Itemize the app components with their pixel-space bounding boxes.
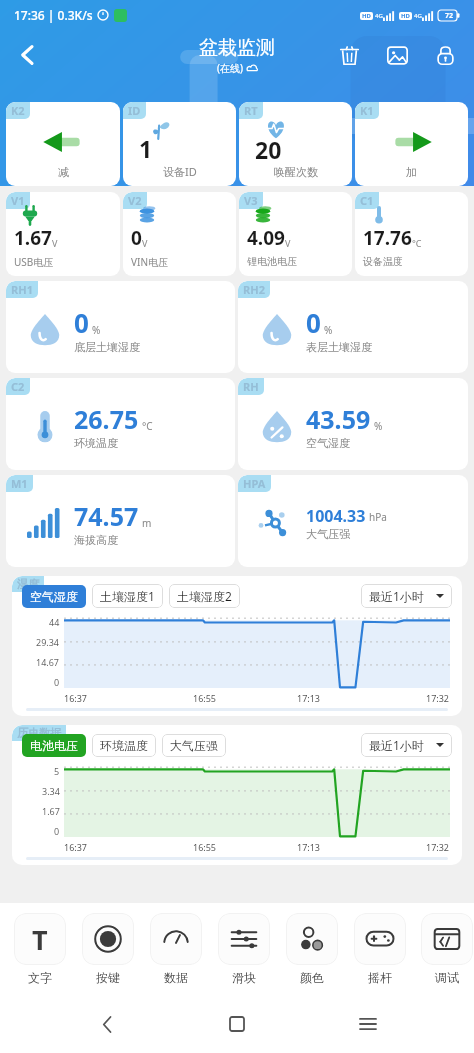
staticText: 0 bbox=[306, 305, 321, 340]
button[interactable]: K1 bbox=[355, 102, 468, 186]
staticText: °C bbox=[412, 237, 422, 249]
button[interactable]: 滑块 bbox=[216, 913, 272, 985]
staticText: 环境温度 bbox=[100, 738, 148, 753]
button[interactable]: Back bbox=[83, 1000, 131, 1048]
button[interactable]: 土壤湿度1 bbox=[92, 584, 163, 608]
staticText: 摇杆 bbox=[368, 970, 392, 985]
button[interactable]: Back bbox=[6, 33, 50, 77]
staticText: 17:13 bbox=[297, 692, 321, 704]
button[interactable]: ID bbox=[123, 102, 236, 186]
button[interactable]: V2 bbox=[123, 192, 236, 276]
staticText: 数据 bbox=[164, 970, 188, 985]
staticText: 16:55 bbox=[193, 841, 217, 853]
button[interactable]: Home bbox=[213, 1000, 261, 1048]
staticText: 大气压强 bbox=[306, 527, 350, 541]
staticText: USB电压 bbox=[14, 255, 54, 268]
staticText: K1 bbox=[360, 103, 374, 118]
button[interactable]: 摇杆 bbox=[352, 913, 408, 985]
staticText: V3 bbox=[244, 193, 258, 208]
button[interactable]: Image bbox=[380, 38, 414, 72]
staticText: 环境温度 bbox=[74, 436, 118, 450]
staticText: V2 bbox=[128, 193, 142, 208]
staticText: RH bbox=[243, 379, 259, 394]
button[interactable]: HPA bbox=[238, 475, 468, 567]
button[interactable]: RH bbox=[238, 378, 468, 470]
staticText: 海拔高度 bbox=[74, 533, 118, 547]
staticText: 16:37 bbox=[64, 692, 88, 704]
button[interactable]: RH1 bbox=[6, 281, 235, 373]
button[interactable]: 调试 bbox=[420, 913, 474, 985]
button[interactable]: 数据 bbox=[148, 913, 204, 985]
staticText: ID bbox=[128, 103, 141, 118]
staticText: 1.67 bbox=[42, 805, 60, 817]
staticText: 土壤湿度1 bbox=[100, 588, 155, 604]
staticText: T bbox=[32, 921, 48, 958]
staticText: 0 bbox=[131, 225, 142, 251]
staticText: 土壤湿度2 bbox=[177, 588, 232, 604]
button[interactable]: V1 bbox=[6, 192, 120, 276]
button[interactable]: 电池电压 bbox=[22, 734, 86, 757]
button[interactable]: RH2 bbox=[238, 281, 468, 373]
staticText: 调试 bbox=[435, 970, 459, 985]
button[interactable]: 最近1小时 bbox=[361, 733, 452, 757]
button[interactable]: 环境温度 bbox=[92, 734, 156, 757]
staticText: V bbox=[285, 237, 291, 249]
staticText: 1004.33 bbox=[306, 505, 366, 527]
staticText: 电池电压 bbox=[30, 738, 78, 753]
staticText: 5 bbox=[54, 765, 60, 777]
button[interactable]: 空气湿度 bbox=[22, 585, 86, 608]
staticText: 3.34 bbox=[42, 785, 60, 797]
staticText: 17:13 bbox=[297, 841, 321, 853]
staticText: 44 bbox=[49, 616, 60, 628]
button[interactable]: 颜色 bbox=[284, 913, 340, 985]
staticText: 17:32 bbox=[426, 692, 450, 704]
button[interactable]: 按键 bbox=[80, 913, 136, 985]
button[interactable]: Recents bbox=[344, 1000, 392, 1048]
button[interactable]: V3 bbox=[239, 192, 352, 276]
staticText: 74.57 bbox=[74, 499, 139, 533]
staticText: 0 bbox=[54, 676, 60, 688]
button[interactable]: Delete bbox=[332, 38, 366, 72]
staticText: 最近1小时 bbox=[369, 588, 424, 604]
staticText: % bbox=[324, 323, 333, 337]
staticText: 17.76 bbox=[363, 225, 412, 251]
staticText: 43.59 bbox=[306, 402, 371, 436]
button[interactable]: Lock bbox=[428, 38, 462, 72]
staticText: 盆栽监测 bbox=[199, 36, 275, 60]
button[interactable]: C2 bbox=[6, 378, 235, 470]
staticText: 29.34 bbox=[36, 636, 60, 648]
staticText: HD bbox=[401, 12, 410, 20]
button[interactable]: 大气压强 bbox=[162, 734, 226, 757]
staticText: 1.67 bbox=[14, 225, 52, 251]
button[interactable]: K2 bbox=[6, 102, 120, 186]
staticText: 滑块 bbox=[232, 970, 256, 985]
staticText: 设备温度 bbox=[363, 255, 403, 268]
staticText: HD bbox=[362, 12, 371, 20]
staticText: C1 bbox=[360, 193, 374, 208]
staticText: 4.09 bbox=[247, 225, 285, 251]
staticText: K2 bbox=[11, 103, 25, 118]
staticText: 历史数据 bbox=[17, 726, 61, 740]
button[interactable]: RT bbox=[239, 102, 352, 186]
staticText: RT bbox=[244, 103, 258, 118]
staticText: (在线) bbox=[217, 61, 243, 75]
button[interactable]: 土壤湿度2 bbox=[169, 584, 240, 608]
staticText: 72 bbox=[445, 11, 454, 21]
button[interactable]: C1 bbox=[355, 192, 468, 276]
button[interactable]: 最近1小时 bbox=[361, 584, 452, 608]
staticText: 锂电池电压 bbox=[247, 255, 297, 268]
staticText: 17:32 bbox=[426, 841, 450, 853]
staticText: 空气湿度 bbox=[30, 589, 78, 604]
staticText: 20 bbox=[255, 134, 282, 165]
staticText: 17:36 | 0.3K/s bbox=[14, 7, 93, 23]
staticText: V1 bbox=[11, 193, 25, 208]
staticText: 14.67 bbox=[36, 656, 60, 668]
staticText: 最近1小时 bbox=[369, 737, 424, 753]
staticText: 减 bbox=[58, 165, 69, 179]
button[interactable]: T bbox=[12, 913, 68, 985]
staticText: M1 bbox=[11, 476, 28, 491]
staticText: V bbox=[142, 237, 148, 249]
staticText: 0 bbox=[54, 825, 60, 837]
staticText: 湿度 bbox=[17, 577, 39, 591]
button[interactable]: M1 bbox=[6, 475, 235, 567]
